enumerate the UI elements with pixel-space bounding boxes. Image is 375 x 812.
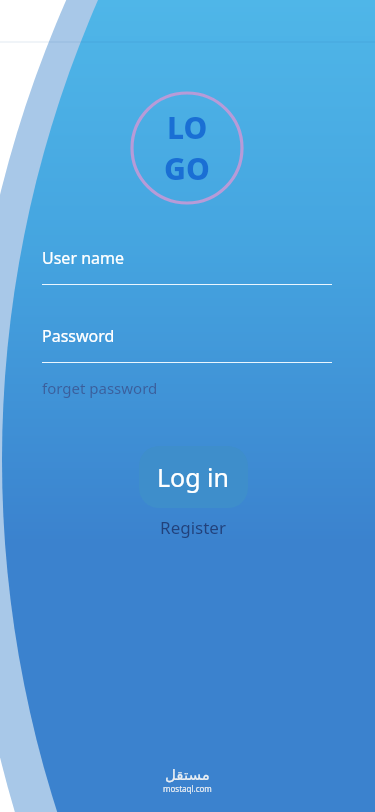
button[interactable]: Log in bbox=[139, 446, 248, 508]
staticText: User name bbox=[42, 247, 125, 269]
staticText: GO bbox=[164, 148, 210, 189]
staticText: Register bbox=[160, 516, 226, 539]
button[interactable]: Register bbox=[143, 514, 243, 540]
staticText: forget password bbox=[42, 378, 158, 398]
staticText: mostaql.com bbox=[163, 783, 212, 794]
staticText: Log in bbox=[157, 460, 230, 494]
staticText: LO bbox=[167, 107, 208, 148]
other: mostaql.com watermark bbox=[0, 766, 375, 794]
button[interactable]: User name bbox=[42, 247, 332, 285]
staticText: مستقل bbox=[165, 766, 210, 783]
staticText: Password bbox=[42, 325, 115, 347]
button[interactable]: forget password bbox=[41, 376, 159, 400]
button[interactable]: Password bbox=[42, 325, 332, 363]
